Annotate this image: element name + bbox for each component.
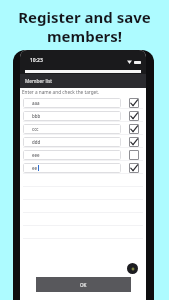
button[interactable]: ccc xyxy=(20,122,146,135)
staticText: ddd xyxy=(32,139,41,145)
button[interactable]: Member list xyxy=(20,74,146,88)
staticText: bbb xyxy=(32,113,41,119)
button[interactable]: OK xyxy=(36,277,131,292)
staticText: Register and save members! xyxy=(0,7,169,46)
button[interactable] xyxy=(20,226,146,239)
button[interactable]: eee xyxy=(20,148,146,161)
staticText: OK xyxy=(80,282,87,288)
button[interactable] xyxy=(20,213,146,226)
button[interactable] xyxy=(20,187,146,200)
button[interactable]: Add member xyxy=(127,263,138,274)
staticText: ee xyxy=(32,165,38,171)
button[interactable] xyxy=(20,200,146,213)
button[interactable] xyxy=(20,174,146,187)
button[interactable]: bbb xyxy=(20,109,146,122)
button[interactable]: ddd xyxy=(20,135,146,148)
staticText: 10:23 xyxy=(30,57,43,64)
staticText: Member list xyxy=(25,78,52,85)
staticText: ccc xyxy=(32,126,39,132)
button[interactable]: aaa xyxy=(20,96,146,109)
staticText: eee xyxy=(32,152,40,158)
staticText: Enter a name and check the target. xyxy=(22,89,100,95)
button[interactable]: ee xyxy=(20,161,146,174)
staticText: aaa xyxy=(32,100,40,106)
